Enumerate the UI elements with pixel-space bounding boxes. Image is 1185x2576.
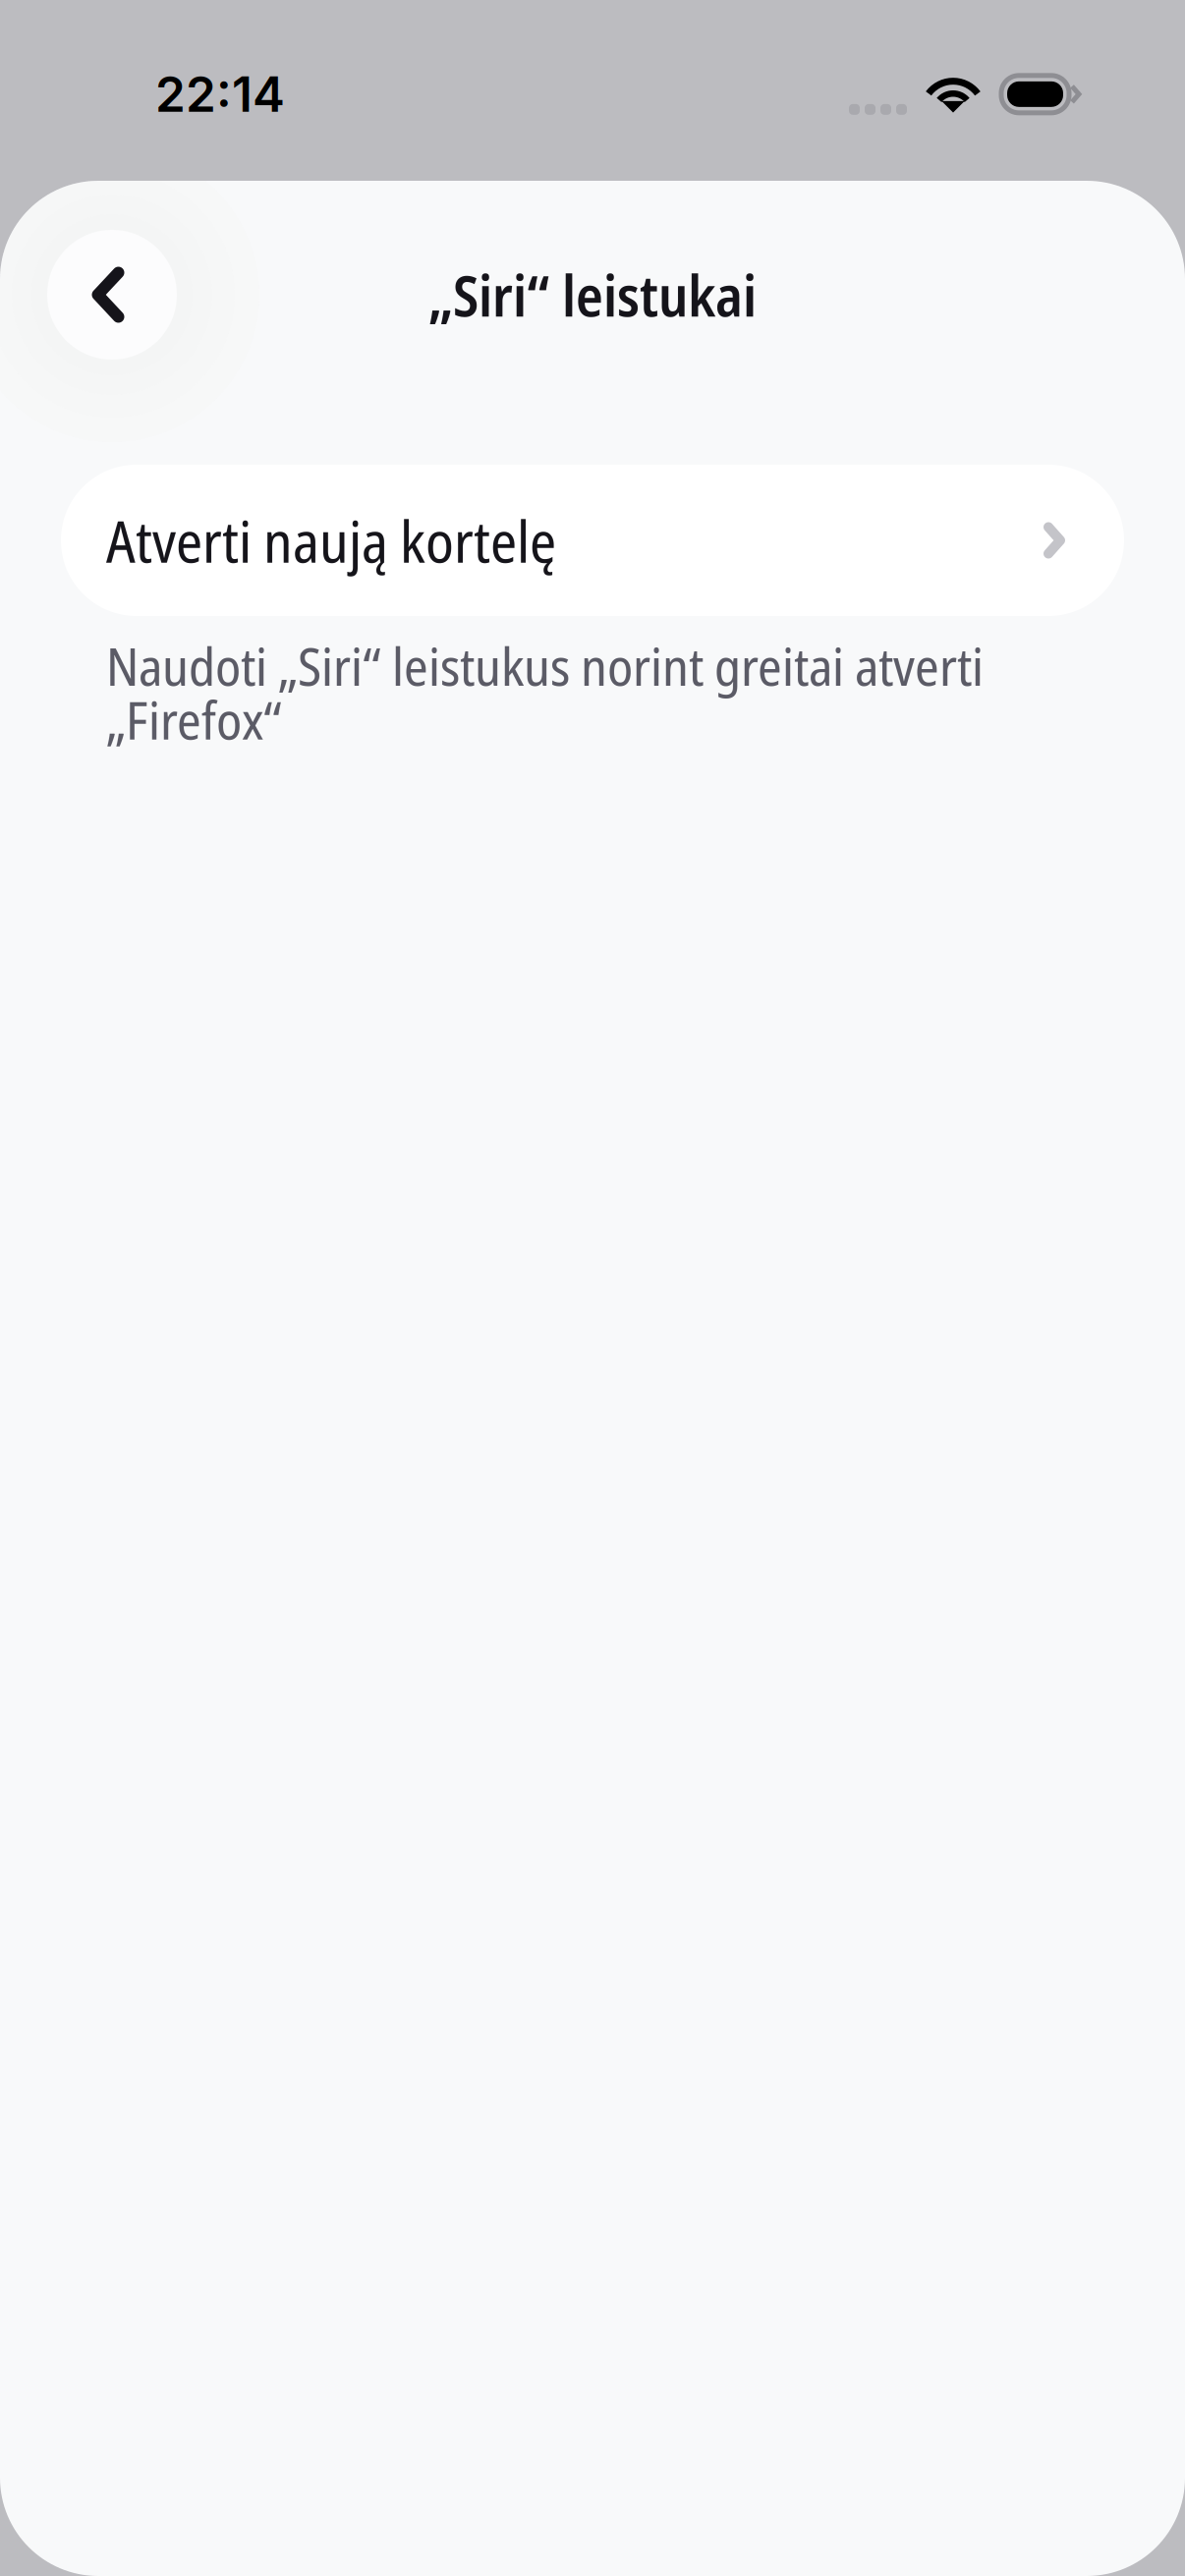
button[interactable]: Atverti naują kortelę (61, 465, 1124, 616)
button[interactable]: Back (47, 230, 177, 360)
staticText: Atverti naują kortelę (106, 501, 556, 580)
staticText: 22:14 (155, 65, 285, 123)
staticText: „Siri“ leistukai (428, 256, 757, 333)
staticText: Naudoti „Siri“ leistukus norint greitai … (106, 630, 984, 755)
